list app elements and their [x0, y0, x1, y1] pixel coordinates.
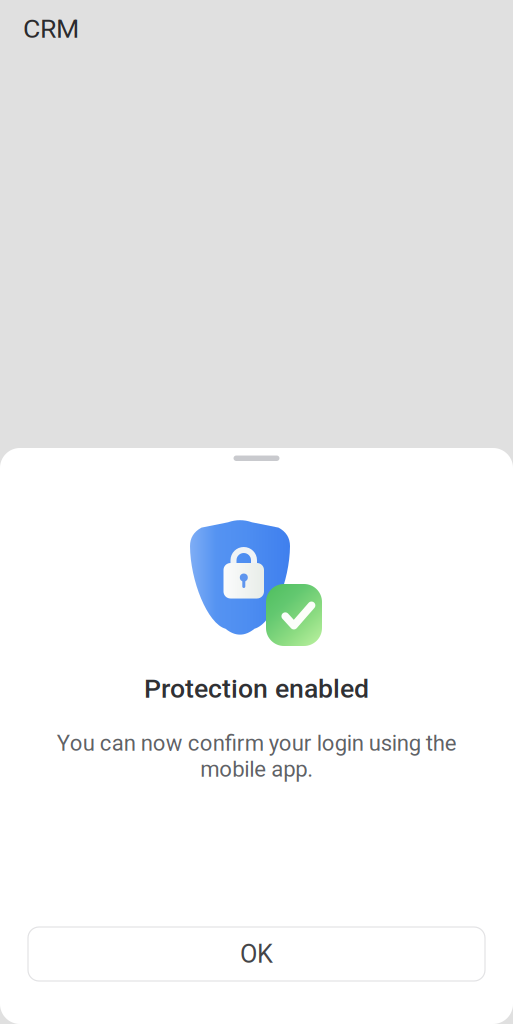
staticText: CRM — [23, 13, 79, 44]
staticText: OK — [240, 939, 273, 969]
staticText: Protection enabled — [144, 673, 369, 704]
staticText: You can now confirm your login using the… — [56, 730, 456, 782]
button[interactable]: OK — [28, 927, 485, 981]
